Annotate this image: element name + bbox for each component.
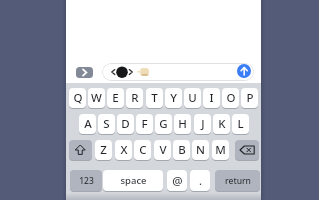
button[interactable]: Q	[69, 88, 86, 108]
button[interactable]: U	[184, 88, 201, 108]
staticText: F	[141, 116, 148, 132]
button[interactable]: O	[222, 88, 239, 108]
button[interactable]: Y	[165, 88, 182, 108]
staticText: B	[178, 142, 186, 158]
button[interactable]	[69, 140, 92, 160]
staticText: I	[209, 90, 214, 106]
button[interactable]: V	[154, 140, 171, 160]
button[interactable]: .	[190, 170, 210, 191]
button[interactable]: E	[107, 88, 124, 108]
staticText: .	[199, 173, 202, 188]
button[interactable]: @	[167, 170, 187, 191]
button[interactable]	[237, 64, 251, 78]
button[interactable]: K	[213, 114, 230, 134]
staticText: Z	[100, 142, 107, 158]
button[interactable]: J	[194, 114, 211, 134]
staticText: @	[172, 173, 183, 189]
staticText: Q	[73, 90, 83, 106]
button[interactable]: return	[215, 170, 260, 191]
button[interactable]: R	[126, 88, 143, 108]
button[interactable]: S	[98, 114, 115, 134]
button[interactable]	[76, 67, 93, 78]
button[interactable]: G	[155, 114, 172, 134]
button[interactable]: C	[134, 140, 151, 160]
staticText: G	[159, 116, 168, 132]
button[interactable]: H	[174, 114, 191, 134]
staticText: W	[91, 90, 102, 106]
staticText: S	[103, 116, 110, 132]
staticText: T	[151, 90, 158, 106]
button[interactable]: X	[115, 140, 132, 160]
staticText: X	[120, 142, 128, 158]
staticText: H	[178, 116, 187, 132]
staticText: Y	[170, 90, 177, 106]
staticText: P	[246, 90, 254, 106]
button[interactable]: 123	[70, 170, 102, 191]
button[interactable]: L	[232, 114, 249, 134]
button[interactable]: N	[192, 140, 209, 160]
button[interactable]: I	[203, 88, 220, 108]
button[interactable]: F	[136, 114, 153, 134]
staticText: K	[218, 116, 226, 132]
staticText: space	[120, 174, 147, 187]
staticText: A	[84, 116, 92, 132]
button[interactable]: Z	[95, 140, 112, 160]
staticText: 123	[79, 175, 94, 187]
staticText: U	[188, 90, 197, 106]
button[interactable]	[102, 63, 254, 81]
staticText: C	[139, 142, 147, 158]
staticText: O	[226, 90, 236, 106]
staticText: V	[159, 142, 167, 158]
staticText: return	[225, 175, 251, 187]
button[interactable]: M	[212, 140, 229, 160]
button[interactable]: T	[146, 88, 163, 108]
button[interactable]: A	[79, 114, 96, 134]
button[interactable]: P	[241, 88, 258, 108]
staticText: L	[237, 116, 244, 132]
staticText: M	[215, 142, 226, 158]
staticText: R	[131, 90, 139, 106]
button[interactable]: D	[117, 114, 134, 134]
staticText: J	[201, 116, 205, 132]
button[interactable]: space	[103, 170, 163, 191]
button[interactable]: B	[173, 140, 190, 160]
button[interactable]	[235, 140, 259, 160]
staticText: D	[121, 116, 130, 132]
staticText: N	[196, 142, 205, 158]
button[interactable]: W	[88, 88, 105, 108]
staticText: E	[112, 90, 119, 106]
